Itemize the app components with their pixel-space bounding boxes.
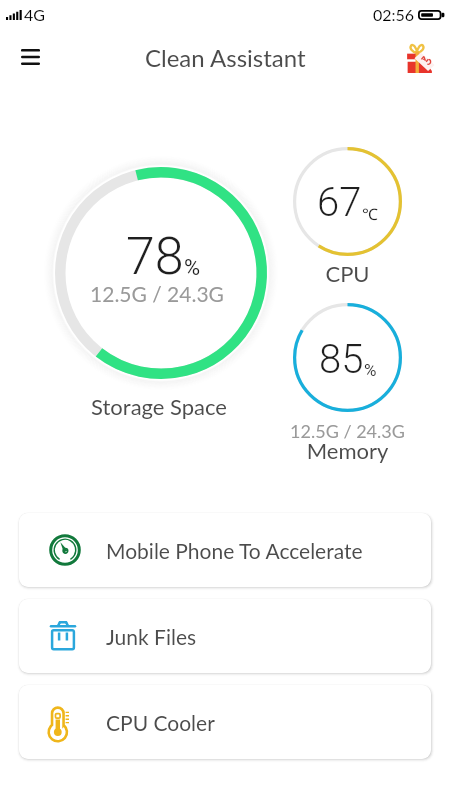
- button[interactable]: Gift advertisement: [397, 37, 437, 77]
- button[interactable]: Menu: [14, 41, 46, 73]
- staticText: 02:56: [373, 5, 415, 24]
- staticText: Storage Space: [0, 393, 318, 419]
- button[interactable]: CPU Cooler: [19, 685, 431, 759]
- button[interactable]: Mobile Phone To Accelerate: [19, 513, 431, 587]
- staticText: 78: [126, 226, 184, 287]
- staticText: Mobile Phone To Accelerate: [106, 538, 363, 563]
- staticText: Junk Files: [106, 624, 197, 649]
- staticText: CPU Cooler: [106, 710, 215, 735]
- staticText: %: [184, 255, 201, 281]
- staticText: 12.5G / 24.3G: [270, 420, 425, 442]
- staticText: ℃: [362, 203, 378, 225]
- staticText: 67: [317, 179, 362, 226]
- staticText: 4G: [24, 5, 45, 24]
- staticText: 85: [319, 336, 364, 383]
- staticText: Clean Assistant: [145, 43, 306, 72]
- button[interactable]: Junk Files: [19, 599, 431, 673]
- staticText: %: [364, 360, 377, 380]
- staticText: Memory: [270, 437, 425, 463]
- staticText: 12.5G / 24.3G: [0, 281, 314, 306]
- staticText: CPU: [270, 260, 425, 286]
